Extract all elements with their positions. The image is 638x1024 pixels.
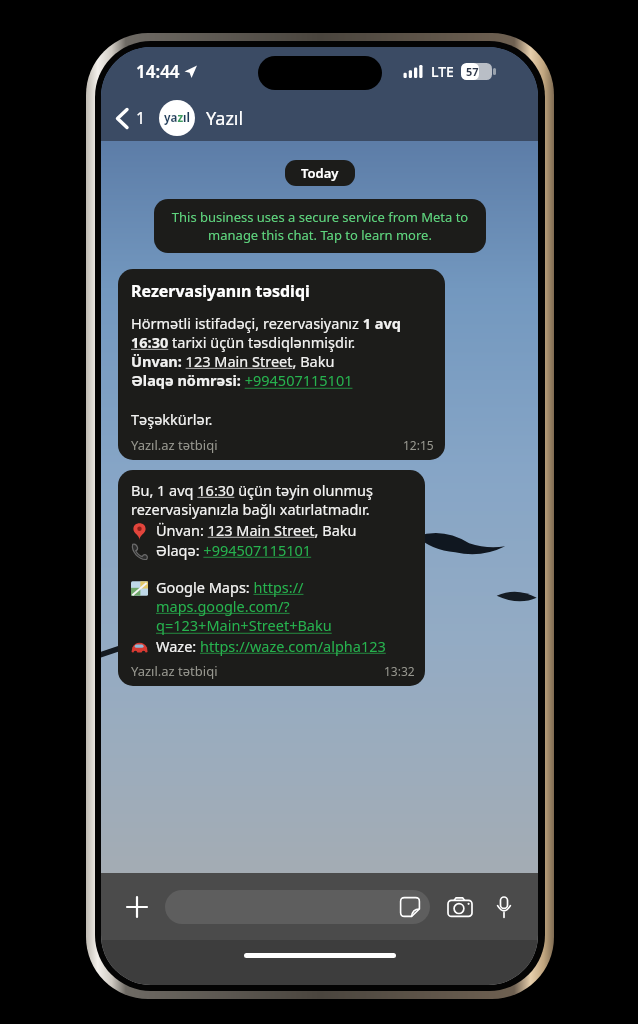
button[interactable]: Voice message xyxy=(486,889,522,925)
staticText: Google Maps: https://maps.google.com/?q=… xyxy=(156,577,415,636)
button[interactable]: yazıl xyxy=(159,100,244,136)
button[interactable]: Message xyxy=(165,890,430,924)
staticText: yazıl xyxy=(164,110,190,126)
button[interactable]: Attach xyxy=(119,889,155,925)
staticText: Today xyxy=(301,164,339,182)
staticText: Yazıl.az tətbiqi xyxy=(131,662,218,680)
staticText: Təşəkkürlər. xyxy=(131,409,213,429)
staticText: Yazıl xyxy=(206,106,244,131)
staticText: 12:15 xyxy=(403,437,434,453)
staticText: Bu, 1 avq 16:30 üçün təyin olunmuş rezer… xyxy=(131,480,415,520)
staticText: LTE xyxy=(431,62,454,81)
staticText: Hörmətli istifadəçi, rezervasiyanız 1 av… xyxy=(131,313,401,391)
button[interactable]: Back xyxy=(109,99,153,137)
button[interactable]: Camera xyxy=(442,889,478,925)
staticText: 13:32 xyxy=(384,663,415,679)
button[interactable]: Today xyxy=(285,160,355,186)
staticText: 1 xyxy=(136,107,146,129)
button[interactable]: Bu, 1 avq 16:30 üçün təyin olunmuş rezer… xyxy=(118,470,425,686)
staticText: This business uses a secure service from… xyxy=(168,208,472,244)
staticText: Waze: https://waze.com/alpha123 xyxy=(156,636,386,656)
staticText: Ünvan: 123 Main Street, Baku xyxy=(156,520,357,540)
staticText: 14:44 xyxy=(136,60,180,83)
staticText: 57 xyxy=(466,64,479,79)
staticText: Rezervasiyanın təsdiqi xyxy=(131,280,310,302)
staticText: Əlaqə: +994507115101 xyxy=(156,540,312,560)
button[interactable]: This business uses a secure service from… xyxy=(154,199,486,253)
staticText: Yazıl.az tətbiqi xyxy=(131,436,218,454)
button[interactable]: Rezervasiyanın təsdiqi xyxy=(118,269,445,460)
